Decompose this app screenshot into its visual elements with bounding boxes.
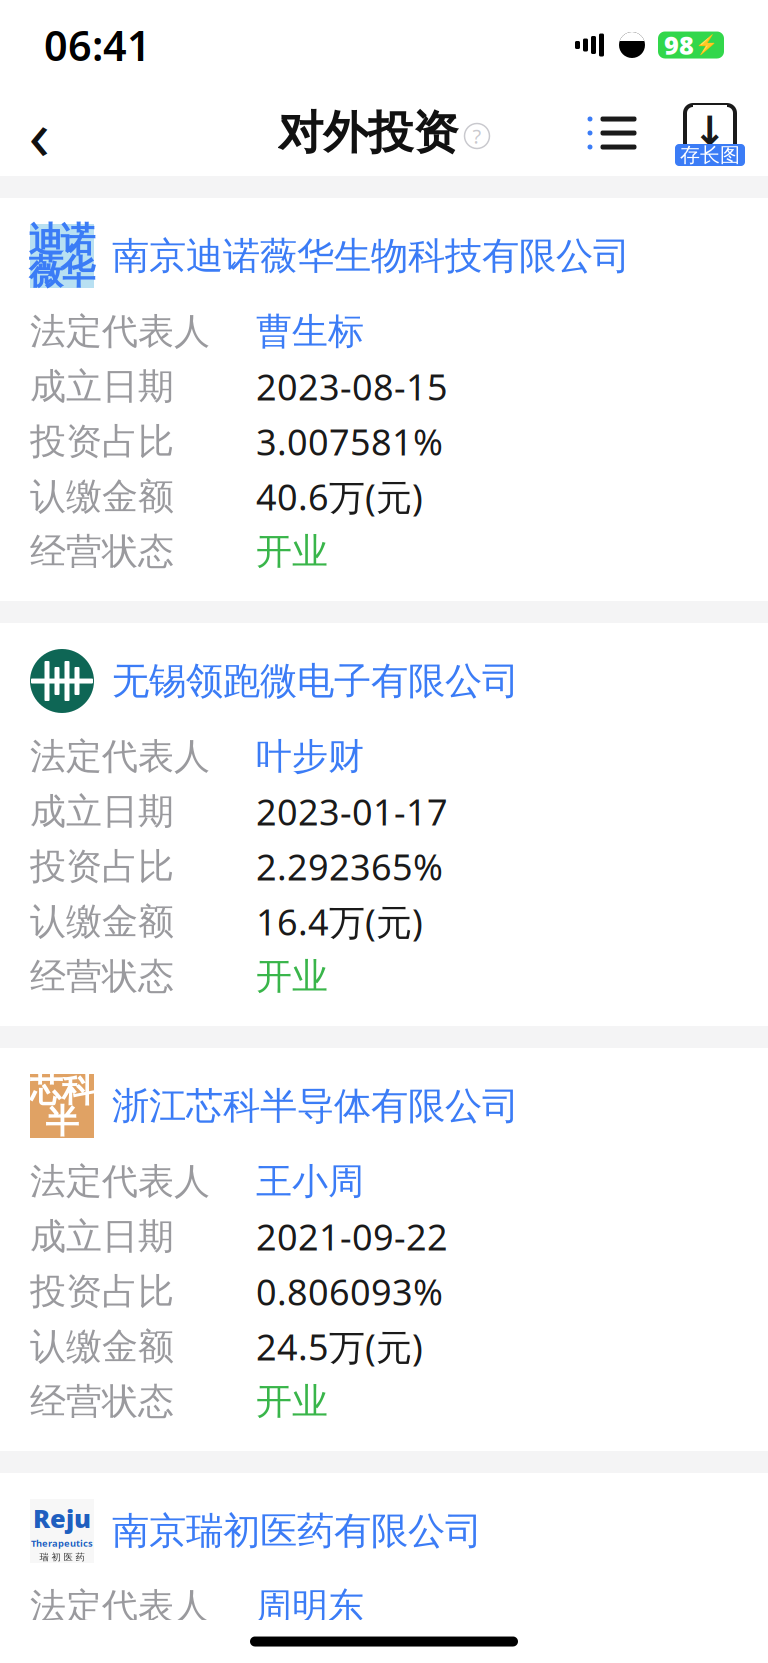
staticText: 法定代表人 — [30, 734, 210, 779]
staticText: 南京瑞初医药有限公司 — [112, 1508, 482, 1554]
staticText: 法定代表人 — [30, 1159, 210, 1204]
staticText: 认缴金额 — [30, 474, 174, 519]
staticText: 0.806093% — [256, 1268, 443, 1315]
button[interactable]: 迪 — [30, 198, 738, 304]
staticText: 瑞 初 医 药 — [39, 1551, 84, 1563]
staticText: ↓ — [693, 108, 727, 154]
staticText: 投资占比 — [30, 419, 174, 464]
staticText: Therapeutics — [31, 1537, 93, 1549]
staticText: 诺 — [60, 219, 95, 261]
button[interactable]: 目录 — [576, 103, 648, 163]
staticText: 法定代表人 — [30, 1584, 210, 1629]
staticText: 投资占比 — [30, 844, 174, 889]
staticText: 24.5万(元) — [256, 1323, 423, 1370]
staticText: 16.4万(元) — [256, 898, 423, 945]
staticText: 成立日期 — [30, 1214, 174, 1259]
staticText: 2020-05-11 — [256, 1638, 448, 1663]
staticText: 芯 — [29, 1070, 62, 1111]
staticText: ⚡ — [695, 34, 718, 56]
staticText: 无锡领跑微电子有限公司 — [112, 658, 519, 704]
staticText: 浙江芯科半导体有限公司 — [112, 1083, 519, 1129]
staticText: 2021-09-22 — [256, 1213, 448, 1260]
staticText: 成立日期 — [30, 789, 174, 834]
staticText: ? — [472, 123, 481, 149]
staticText: 2023-08-15 — [256, 363, 448, 410]
staticText: 开业 — [256, 954, 328, 999]
staticText: 南京迪诺薇华生物科技有限公司 — [112, 233, 630, 279]
button[interactable]: 存长图 — [674, 97, 746, 169]
staticText: 周明东 — [256, 1584, 364, 1629]
staticText: ‹ — [28, 87, 49, 179]
staticText: 迪 — [28, 219, 63, 261]
staticText: 薇 — [28, 251, 63, 293]
staticText: 曹生标 — [256, 309, 364, 354]
staticText: 认缴金额 — [30, 1324, 174, 1369]
button[interactable]: Reju — [30, 1473, 738, 1579]
staticText: Reju — [33, 1501, 91, 1535]
button[interactable]: 无锡领跑微电子有限公司 — [30, 623, 738, 729]
staticText: 法定代表人 — [30, 309, 210, 354]
staticText: 2.292365% — [256, 843, 443, 890]
staticText: 存长图 — [680, 143, 740, 167]
staticText: 对外投资 — [278, 105, 458, 161]
staticText: 3.007581% — [256, 418, 443, 465]
staticText: 开业 — [256, 1379, 328, 1424]
staticText: 2023-01-17 — [256, 788, 448, 835]
staticText: 98 — [664, 28, 694, 62]
staticText: 半 — [45, 1101, 78, 1142]
staticText: 投资占比 — [30, 1269, 174, 1314]
staticText: 科 — [61, 1070, 94, 1111]
staticText: 王小周 — [256, 1159, 364, 1204]
staticText: 叶步财 — [256, 734, 364, 779]
button[interactable]: 返回 — [0, 94, 78, 172]
staticText: 经营状态 — [30, 529, 174, 574]
staticText: 经营状态 — [30, 954, 174, 999]
staticText: 华 — [60, 251, 95, 293]
staticText: 06:41 — [44, 18, 151, 72]
staticText: 40.6万(元) — [256, 473, 423, 520]
staticText: 认缴金额 — [30, 899, 174, 944]
staticText: 经营状态 — [30, 1379, 174, 1424]
staticText: 成立日期 — [30, 364, 174, 409]
staticText: 开业 — [256, 529, 328, 574]
button[interactable]: 芯 — [30, 1048, 738, 1154]
